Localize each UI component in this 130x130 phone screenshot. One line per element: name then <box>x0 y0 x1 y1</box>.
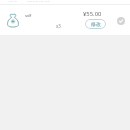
button[interactable]: 修改 <box>85 19 106 29</box>
staticText: 修改 <box>91 21 101 27</box>
staticText: sdf <box>25 12 32 18</box>
staticText: x3 <box>56 23 61 29</box>
staticText: ¥55.00 <box>83 10 102 18</box>
staticText: 编号： <box>8 0 23 2</box>
button[interactable]: Select item <box>114 14 127 27</box>
staticText: 88201543 <box>27 0 50 2</box>
